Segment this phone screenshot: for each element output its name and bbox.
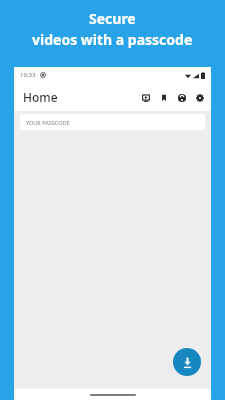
button[interactable]: Download	[173, 348, 201, 376]
button[interactable]: Bookmarks	[157, 91, 170, 104]
button[interactable]: Help	[175, 91, 188, 104]
staticText: Home	[23, 89, 58, 105]
button[interactable]: Videos	[139, 91, 152, 104]
button[interactable]: YOUR PASSCODE	[20, 114, 205, 130]
staticText: Secure	[89, 9, 136, 28]
button[interactable]: Settings	[193, 91, 206, 104]
staticText: 10:33	[20, 71, 36, 79]
staticText: videos with a passcode	[32, 30, 193, 49]
staticText: YOUR PASSCODE	[26, 119, 70, 126]
